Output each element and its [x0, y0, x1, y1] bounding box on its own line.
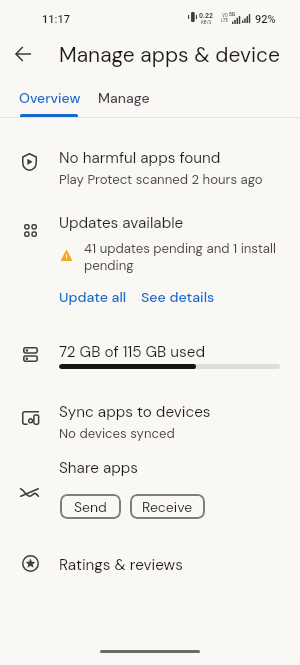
button[interactable]: Update all: [55, 285, 131, 309]
button[interactable]: Ratings & reviews: [0, 548, 300, 580]
staticText: Overview: [19, 89, 81, 107]
button[interactable]: Send: [60, 494, 121, 519]
staticText: Update all: [59, 288, 127, 306]
staticText: Manage apps & device: [59, 41, 280, 68]
staticText: 72 GB of 115 GB used: [59, 342, 205, 362]
staticText: Sync apps to devices: [59, 402, 211, 422]
staticText: Share apps: [59, 458, 139, 478]
button[interactable]: Manage: [89, 86, 153, 117]
staticText: No devices synced: [59, 425, 175, 442]
staticText: 92%: [255, 13, 276, 26]
staticText: 0.22: [199, 12, 214, 20]
button[interactable]: Sync apps to devices: [0, 396, 300, 446]
staticText: Send: [74, 498, 107, 516]
staticText: Updates available: [59, 213, 184, 233]
button[interactable]: No harmful apps found: [0, 140, 300, 195]
button[interactable]: See details: [137, 285, 219, 309]
staticText: See details: [141, 288, 215, 306]
staticText: No harmful apps found: [59, 148, 221, 168]
button[interactable]: Receive: [130, 494, 205, 519]
staticText: KB/S: [201, 20, 212, 25]
staticText: 41 updates pending and 1 install pending: [84, 240, 289, 274]
button[interactable]: Back: [3, 34, 43, 74]
button[interactable]: Overview: [10, 86, 88, 117]
staticText: Play Protect scanned 2 hours ago: [59, 171, 263, 188]
staticText: LTE: [221, 18, 229, 23]
staticText: Manage: [98, 89, 150, 107]
staticText: Receive: [142, 498, 193, 516]
staticText: Ratings & reviews: [59, 555, 183, 575]
staticText: 5G: [229, 11, 236, 17]
staticText: VO: [222, 13, 228, 18]
button[interactable]: 72 GB of 115 GB used: [0, 336, 300, 380]
staticText: 11:17: [42, 13, 70, 26]
